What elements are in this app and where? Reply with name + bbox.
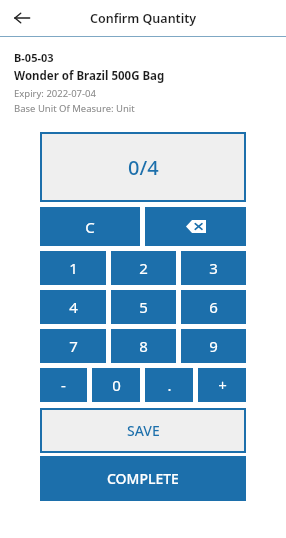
- staticText: 7: [69, 336, 78, 356]
- button[interactable]: 0: [92, 368, 140, 402]
- button[interactable]: 7: [40, 329, 106, 363]
- button[interactable]: Backspace: [145, 207, 246, 246]
- staticText: 4: [69, 297, 78, 317]
- staticText: 5: [139, 297, 148, 317]
- staticText: Wonder of Brazil 500G Bag: [14, 68, 165, 84]
- staticText: 8: [139, 336, 148, 356]
- button[interactable]: 5: [111, 290, 176, 324]
- staticText: 0/4: [128, 154, 159, 181]
- button[interactable]: 0/4: [40, 132, 246, 202]
- staticText: 9: [209, 336, 218, 356]
- button[interactable]: +: [198, 368, 246, 402]
- staticText: 6: [209, 297, 218, 317]
- staticText: Confirm Quantity: [90, 10, 197, 27]
- button[interactable]: 6: [181, 290, 246, 324]
- staticText: 2: [139, 258, 148, 278]
- staticText: .: [167, 375, 172, 395]
- staticText: -: [61, 375, 66, 395]
- button[interactable]: 2: [111, 251, 176, 285]
- staticText: C: [85, 217, 95, 237]
- staticText: SAVE: [127, 421, 160, 440]
- button[interactable]: .: [145, 368, 193, 402]
- button[interactable]: SAVE: [40, 408, 246, 453]
- staticText: 1: [69, 258, 78, 278]
- button[interactable]: C: [40, 207, 140, 246]
- staticText: Expiry: 2022-07-04: [14, 87, 96, 100]
- staticText: +: [218, 375, 227, 395]
- button[interactable]: 8: [111, 329, 176, 363]
- button[interactable]: 9: [181, 329, 246, 363]
- button[interactable]: 3: [181, 251, 246, 285]
- button[interactable]: 4: [40, 290, 106, 324]
- staticText: COMPLETE: [107, 469, 179, 488]
- button[interactable]: Back: [8, 4, 36, 32]
- button[interactable]: -: [40, 368, 87, 402]
- staticText: 3: [209, 258, 218, 278]
- staticText: B-05-03: [14, 50, 54, 65]
- staticText: Base Unit Of Measure: Unit: [14, 102, 135, 115]
- button[interactable]: 1: [40, 251, 106, 285]
- staticText: 0: [112, 375, 121, 395]
- button[interactable]: COMPLETE: [40, 456, 246, 501]
